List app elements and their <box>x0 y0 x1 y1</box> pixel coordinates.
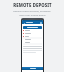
button[interactable] <box>22 67 43 70</box>
button[interactable] <box>23 26 42 29</box>
staticText: Deposit checks anytime, anywhere <box>13 10 51 13</box>
button[interactable] <box>22 36 43 39</box>
button[interactable] <box>22 42 43 45</box>
button[interactable] <box>22 39 43 42</box>
button[interactable] <box>22 30 43 33</box>
button[interactable] <box>22 33 43 36</box>
button[interactable]: Menu <box>23 22 25 24</box>
staticText: from your mobile device <box>19 14 46 17</box>
staticText: REMOTE DEPOSIT <box>13 2 52 8</box>
button[interactable]: Account <box>40 22 42 24</box>
button[interactable]: REMOTE DEPOSIT <box>0 2 64 8</box>
